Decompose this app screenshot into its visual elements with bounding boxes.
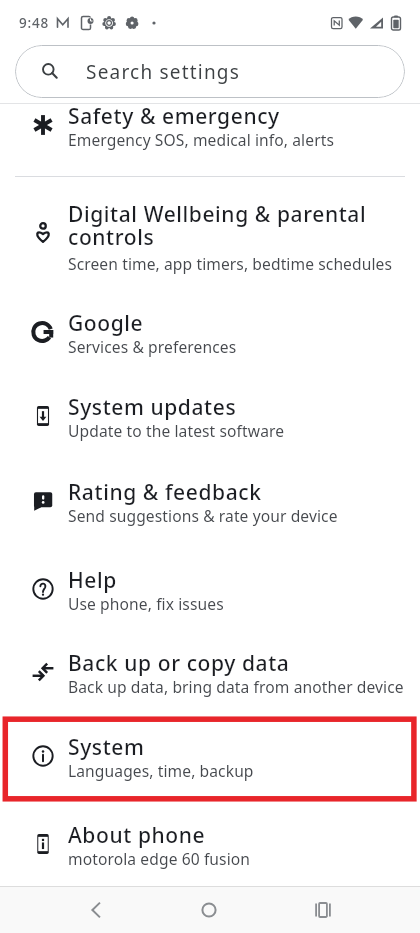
staticText: Digital Wellbeing & parental controls: [68, 200, 378, 251]
button[interactable]: Back: [73, 887, 119, 933]
button[interactable]: Recent apps: [300, 887, 346, 933]
staticText: Back up data, bring data from another de…: [68, 676, 412, 697]
staticText: System updates: [68, 393, 412, 422]
button[interactable]: Help: [0, 547, 420, 633]
staticText: Services & preferences: [68, 336, 412, 357]
staticText: Screen time, app timers, bedtime schedul…: [68, 253, 412, 274]
staticText: Rating & feedback: [68, 478, 412, 507]
button[interactable]: Google: [0, 292, 420, 377]
button[interactable]: System: [0, 717, 420, 802]
staticText: Emergency SOS, medical info, alerts: [68, 129, 412, 150]
button[interactable]: Rating & feedback: [0, 462, 420, 547]
button[interactable]: Safety & emergency: [0, 104, 420, 176]
button[interactable]: About phone: [0, 802, 420, 886]
staticText: About phone: [68, 821, 412, 850]
staticText: Safety & emergency: [68, 104, 412, 131]
button[interactable]: System updates: [0, 377, 420, 462]
button[interactable]: Back up or copy data: [0, 633, 420, 717]
staticText: Use phone, fix issues: [68, 593, 412, 614]
staticText: Help: [68, 566, 412, 595]
staticText: Update to the latest software: [68, 420, 412, 441]
button[interactable]: Search settings: [15, 45, 405, 98]
staticText: Back up or copy data: [68, 649, 412, 678]
staticText: Google: [68, 309, 412, 338]
staticText: 9:48: [19, 14, 50, 32]
staticText: Search settings: [86, 59, 241, 85]
staticText: Languages, time, backup: [68, 760, 412, 781]
staticText: System: [68, 733, 412, 762]
staticText: motorola edge 60 fusion: [68, 848, 412, 869]
button[interactable]: Digital Wellbeing & parental controls: [0, 177, 420, 292]
staticText: Send suggestions & rate your device: [68, 505, 412, 526]
button[interactable]: Home: [186, 887, 232, 933]
